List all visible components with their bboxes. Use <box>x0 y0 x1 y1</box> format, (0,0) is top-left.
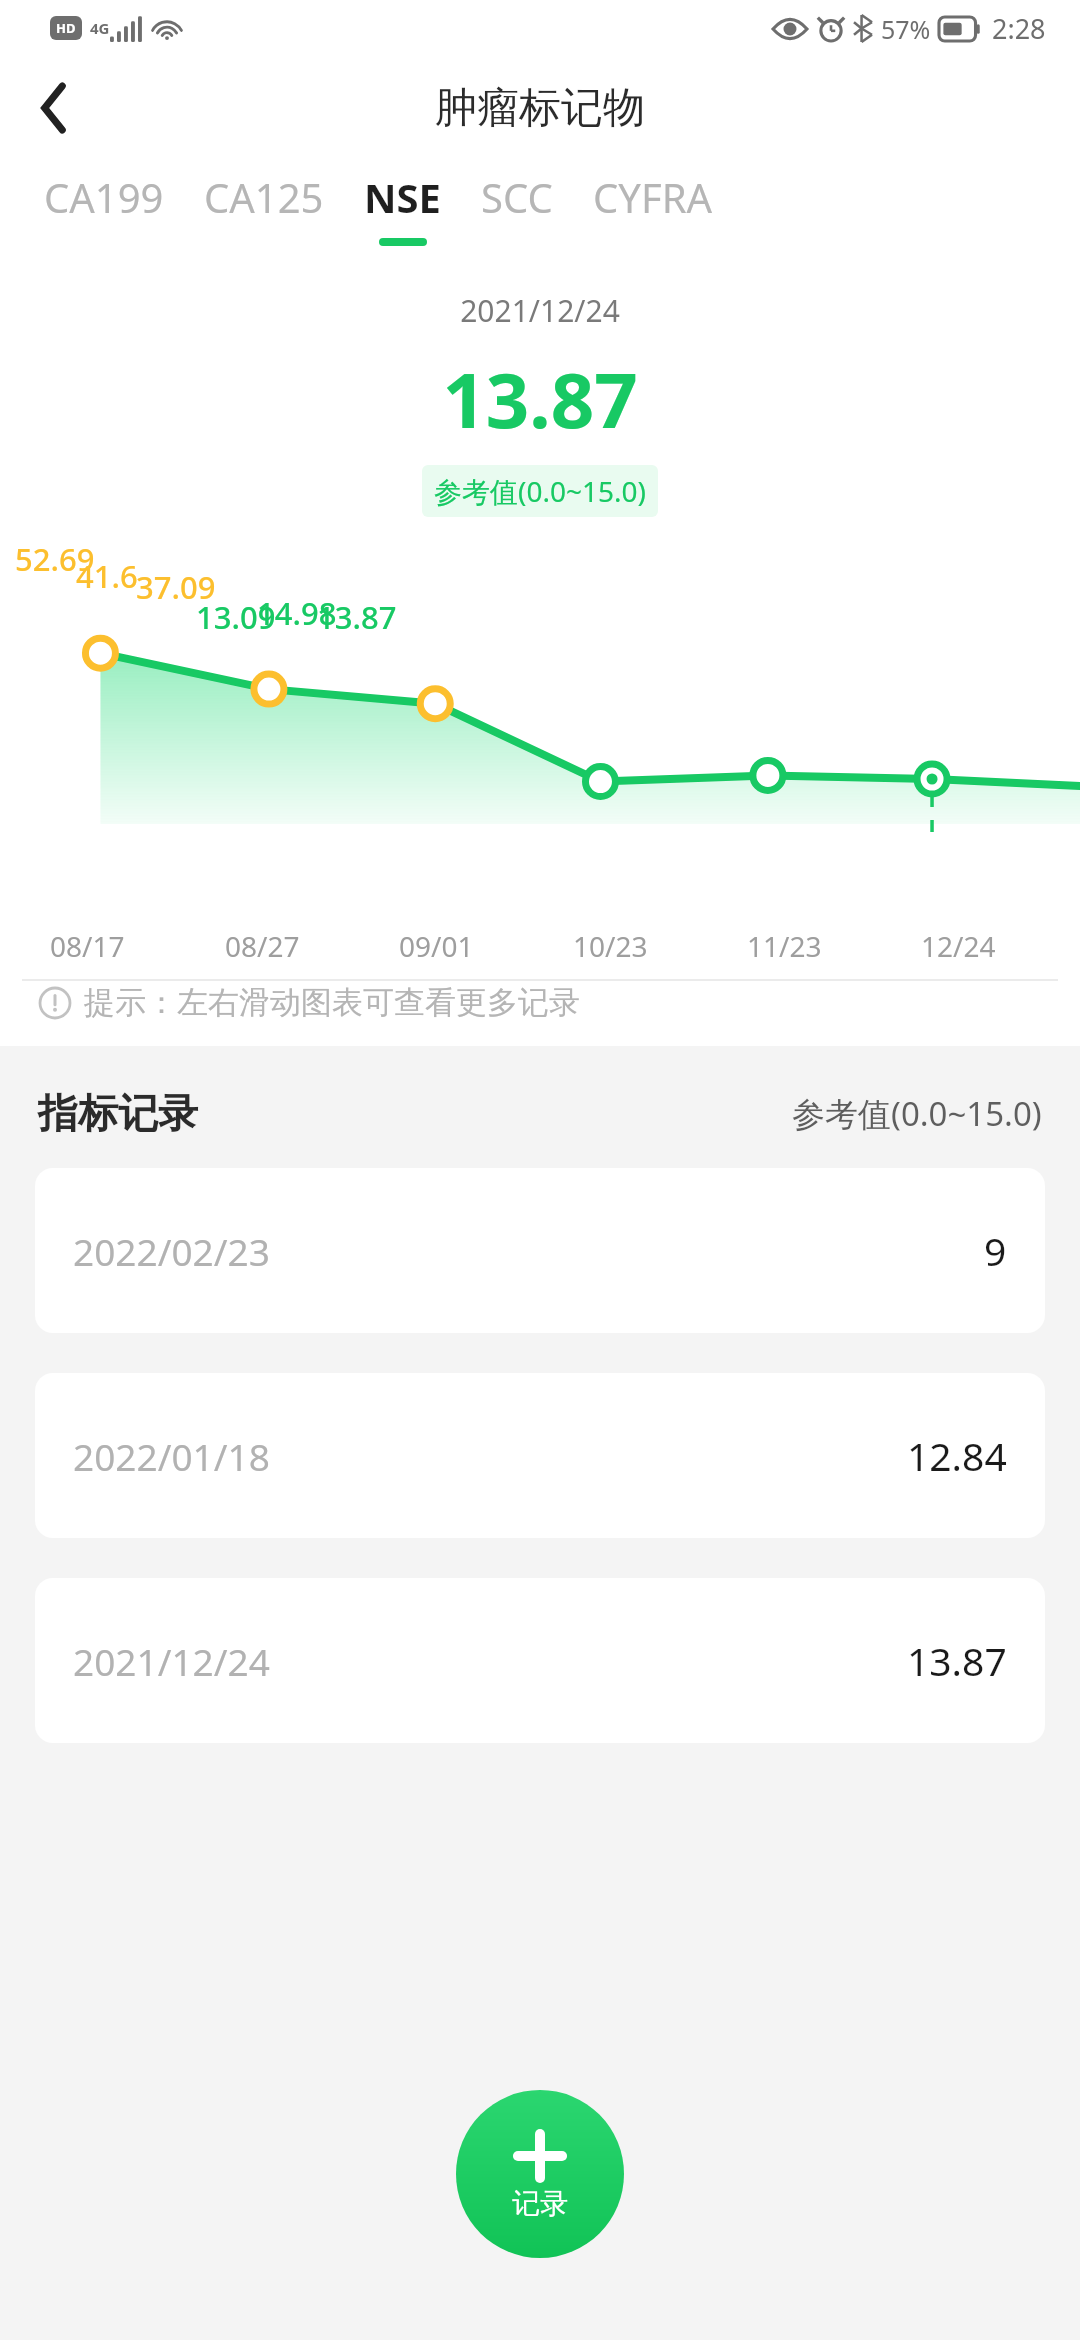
staticText: 2021/12/24 <box>73 1636 270 1686</box>
button[interactable]: 添加记录 <box>456 2090 624 2258</box>
staticText: 2022/01/18 <box>73 1431 270 1481</box>
staticText: NSE <box>364 170 441 224</box>
staticText: 参考值(0.0~15.0) <box>434 472 646 510</box>
staticText: 10/23 <box>573 927 648 965</box>
staticText: 2:28 <box>992 10 1046 47</box>
staticText: 提示：左右滑动图表可查看更多记录 <box>84 983 580 1022</box>
staticText: 11/23 <box>747 927 822 965</box>
button[interactable]: 2021/12/24 <box>35 1578 1045 1743</box>
staticText: 12.84 <box>907 1429 1007 1482</box>
button[interactable]: CA125 <box>204 160 324 238</box>
staticText: CYFRA <box>593 170 713 224</box>
button[interactable]: 2022/02/23 <box>35 1168 1045 1333</box>
staticText: 13.87 <box>317 596 397 638</box>
staticText: 4G <box>90 18 110 38</box>
staticText: CA199 <box>44 170 164 224</box>
staticText: SCC <box>481 170 553 224</box>
button[interactable]: Back <box>16 70 92 146</box>
staticText: 14.98 <box>257 592 337 634</box>
staticText: 08/17 <box>50 927 125 965</box>
staticText: 肿瘤标记物 <box>435 82 645 135</box>
staticText: 记录 <box>512 2186 568 2221</box>
staticText: 52.69 <box>15 538 95 580</box>
staticText: 指标记录 <box>38 1088 198 1138</box>
staticText: 2021/12/24 <box>0 290 1080 331</box>
button[interactable]: CYFRA <box>593 160 713 238</box>
button[interactable]: NSE <box>364 160 441 246</box>
button[interactable]: CA199 <box>44 160 164 238</box>
staticText: 9 <box>984 1224 1007 1277</box>
staticText: 13.87 <box>0 347 1080 451</box>
staticText: 37.09 <box>136 566 216 608</box>
staticText: 57% <box>881 12 931 46</box>
button[interactable]: 2022/01/18 <box>35 1373 1045 1538</box>
staticText: 09/01 <box>399 927 474 965</box>
staticText: 41.6 <box>76 555 138 597</box>
staticText: CA125 <box>204 170 324 224</box>
staticText: 参考值(0.0~15.0) <box>792 1091 1042 1136</box>
button[interactable]: SCC <box>481 160 553 238</box>
staticText: 13.09 <box>196 596 276 638</box>
staticText: 2022/02/23 <box>73 1226 270 1276</box>
staticText: 08/27 <box>225 927 300 965</box>
staticText: 13.87 <box>907 1634 1007 1687</box>
staticText: HD <box>56 19 76 37</box>
staticText: 12/24 <box>921 927 996 965</box>
